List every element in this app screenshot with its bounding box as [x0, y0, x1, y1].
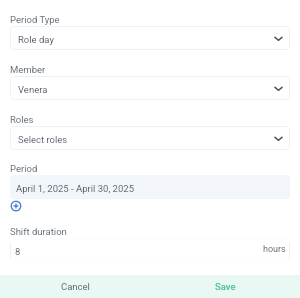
button[interactable]: Venera [10, 76, 290, 100]
staticText: Select roles [18, 134, 68, 145]
staticText: April 1, 2025 - April 30, 2025 [16, 183, 134, 194]
button[interactable]: Add period [10, 200, 22, 212]
button[interactable]: Cancel [0, 275, 150, 298]
staticText: Shift duration [10, 226, 67, 237]
staticText: Member [10, 64, 46, 75]
staticText: Role day [18, 34, 54, 45]
staticText: Save [215, 281, 236, 292]
staticText: Period Type [10, 14, 60, 25]
staticText: Cancel [61, 281, 90, 292]
staticText: Period [10, 163, 38, 174]
staticText: Venera [18, 84, 48, 95]
staticText: 8 [15, 246, 21, 257]
button[interactable]: Save [150, 275, 300, 298]
staticText: hours [263, 244, 286, 255]
button[interactable]: Select roles [10, 126, 290, 150]
staticText: Roles [10, 114, 34, 125]
button[interactable]: Role day [10, 26, 290, 50]
button[interactable]: 8 [10, 239, 290, 262]
button[interactable]: April 1, 2025 - April 30, 2025 [10, 175, 290, 199]
